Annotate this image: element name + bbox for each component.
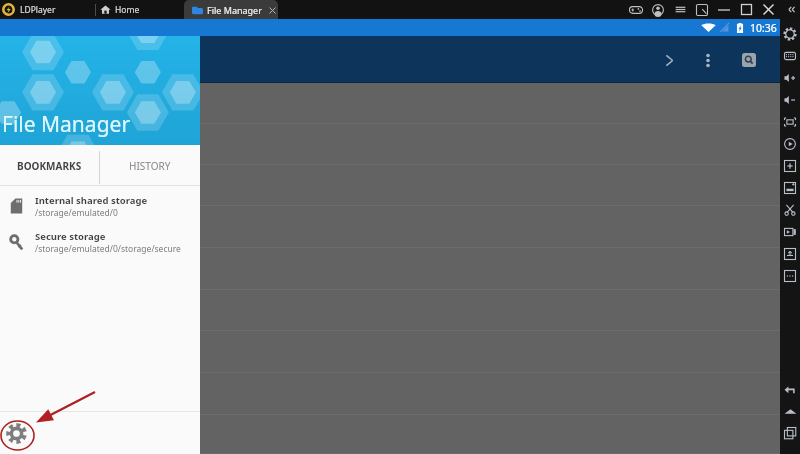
button[interactable] <box>0 83 780 124</box>
staticText: Secure storage <box>35 230 106 243</box>
button[interactable]: Minimize <box>718 4 730 16</box>
button[interactable]: Close <box>763 4 774 15</box>
button[interactable] <box>0 206 780 248</box>
button[interactable]: Collapse <box>786 4 797 15</box>
button[interactable]: Video <box>780 221 800 243</box>
button[interactable]: Forward <box>655 46 683 74</box>
button[interactable] <box>0 373 780 415</box>
staticText: File Manager <box>207 4 262 16</box>
button[interactable]: Search <box>742 53 756 67</box>
staticText: 10:36 <box>750 21 777 35</box>
button[interactable]: Multi instance <box>696 4 708 16</box>
button[interactable]: Volume up <box>780 67 800 89</box>
button[interactable]: Back <box>780 378 800 400</box>
button[interactable]: Game controls <box>629 3 643 17</box>
button[interactable]: Add <box>780 155 800 177</box>
button[interactable]: File Manager <box>184 0 278 19</box>
staticText: /storage/emulated/0 <box>35 207 118 219</box>
button[interactable]: HISTORY <box>100 145 200 186</box>
button[interactable]: Secure storage <box>0 224 200 260</box>
button[interactable]: Full screen <box>780 111 800 133</box>
staticText: BOOKMARKS <box>17 159 82 173</box>
button[interactable]: Share <box>780 243 800 265</box>
button[interactable]: More <box>780 265 800 287</box>
button[interactable]: Keyboard <box>780 45 800 67</box>
button[interactable]: Internal shared storage <box>0 188 200 224</box>
staticText: File Manager <box>2 110 131 139</box>
button[interactable]: BOOKMARKS <box>0 145 99 186</box>
staticText: Home <box>115 4 140 16</box>
button[interactable]: Scissors <box>780 199 800 221</box>
button[interactable]: Menu <box>675 4 686 15</box>
staticText: HISTORY <box>129 159 171 173</box>
button[interactable] <box>0 248 780 290</box>
button[interactable] <box>0 415 780 454</box>
staticText: LDPlayer <box>20 4 56 16</box>
button[interactable]: More options <box>694 46 722 74</box>
button[interactable]: Recents <box>780 422 800 444</box>
button[interactable]: Volume down <box>780 89 800 111</box>
button[interactable] <box>0 331 780 373</box>
staticText: Internal shared storage <box>35 194 148 207</box>
button[interactable] <box>0 124 780 165</box>
button[interactable] <box>0 290 780 331</box>
button[interactable]: Install APK <box>780 177 800 199</box>
button[interactable]: Record <box>780 133 800 155</box>
button[interactable]: Maximize <box>741 4 752 15</box>
button[interactable]: Settings <box>4 421 28 445</box>
button[interactable] <box>0 165 780 206</box>
button[interactable]: Account <box>652 4 664 16</box>
button[interactable]: Home <box>780 400 800 422</box>
staticText: /storage/emulated/0/storage/secure <box>35 243 181 255</box>
button[interactable]: Settings <box>780 23 800 45</box>
